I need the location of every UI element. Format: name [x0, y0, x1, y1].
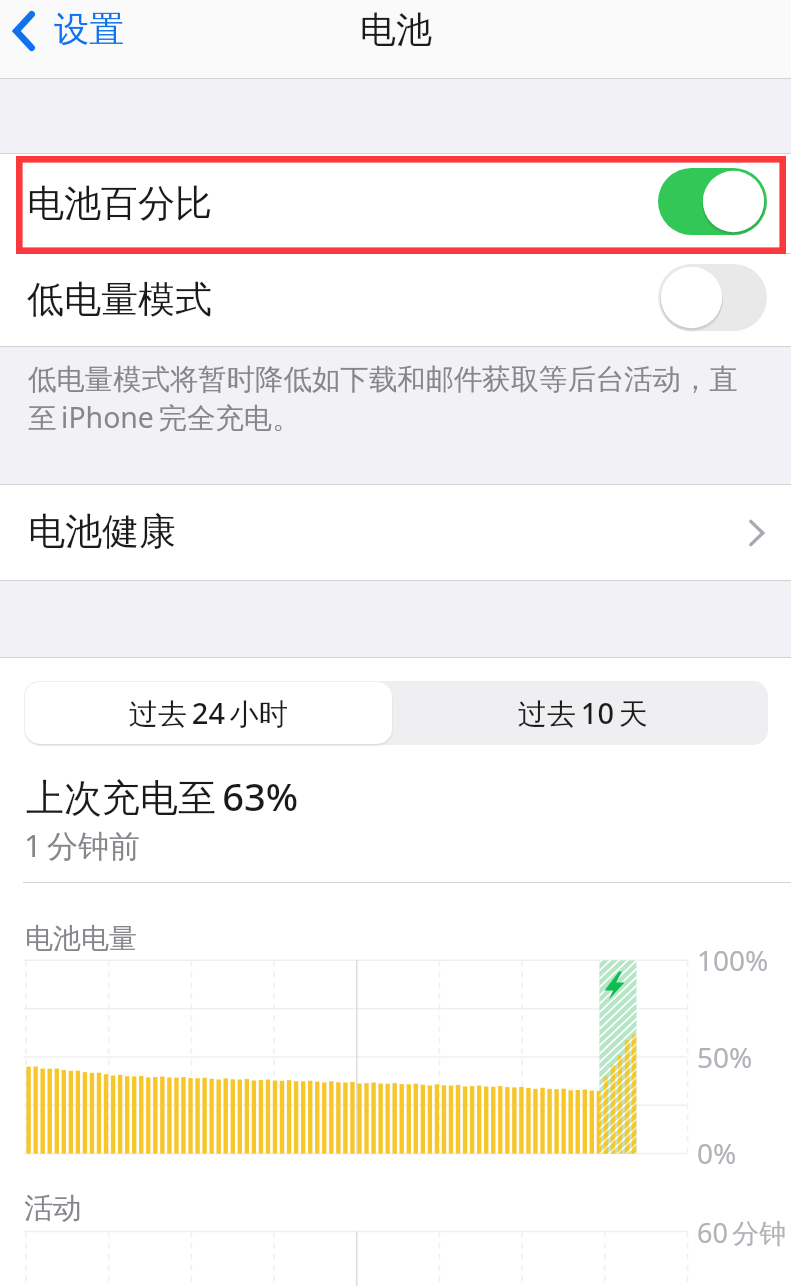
staticText: 设置 — [54, 7, 124, 51]
button[interactable]: 返回设置 — [3, 1, 130, 61]
staticText: 过去 10 天 — [518, 693, 648, 733]
staticText: 电池电量 — [25, 921, 137, 956]
staticText: 活动 — [24, 1190, 82, 1227]
staticText: 1 分钟前 — [24, 824, 140, 866]
button[interactable]: 低电量模式 — [0, 253, 791, 346]
staticText: 上次充电至 63% — [26, 770, 299, 822]
staticText: 至 iPhone 完全充电。 — [28, 398, 301, 437]
button[interactable]: 电池百分比 — [0, 154, 791, 253]
staticText: 电池百分比 — [27, 180, 212, 227]
staticText: 低电量模式 — [27, 276, 212, 323]
button[interactable]: 已关闭 — [658, 264, 767, 331]
button[interactable]: 已开启 — [658, 168, 767, 235]
staticText: 过去 24 小时 — [129, 693, 288, 733]
button[interactable]: 过去 10 天 — [394, 681, 771, 745]
staticText: 50% — [697, 1038, 753, 1076]
staticText: 0% — [697, 1134, 737, 1172]
staticText: 电池 — [360, 7, 432, 52]
staticText: 60 分钟 — [697, 1214, 787, 1251]
staticText: 低电量模式将暂时降低如下载和邮件获取等后台活动，直 — [28, 362, 738, 398]
button[interactable]: 电池健康 — [0, 484, 791, 579]
staticText: 电池健康 — [28, 508, 176, 555]
staticText: 100% — [697, 941, 769, 979]
button[interactable]: 过去 24 小时 — [25, 682, 392, 744]
